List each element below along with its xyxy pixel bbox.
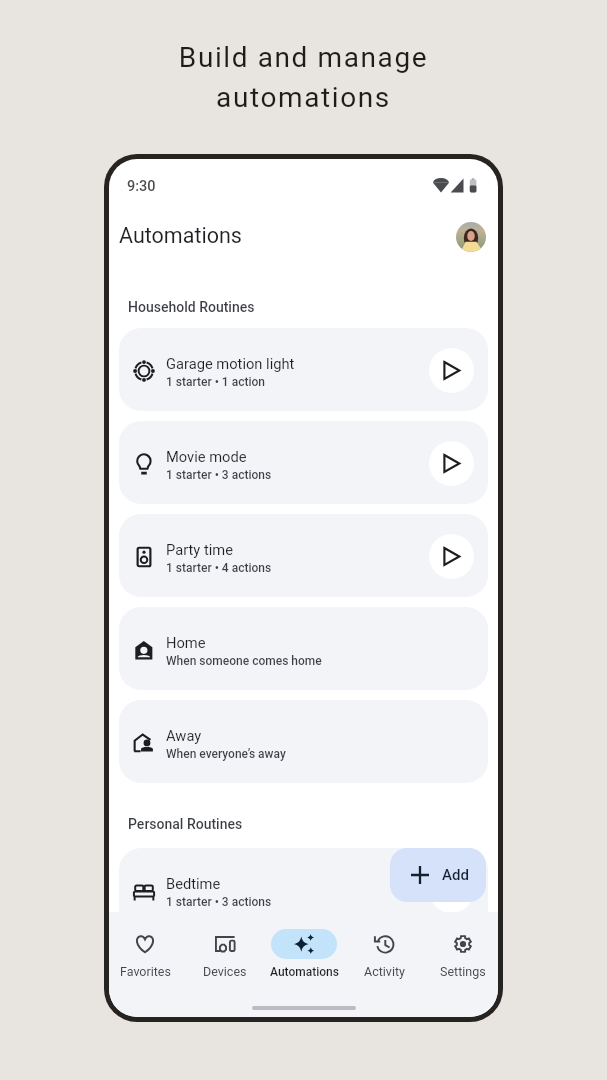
staticText: 1 starter • 1 action	[166, 375, 266, 389]
staticText: Movie mode	[166, 448, 247, 465]
button[interactable]: Run automation	[429, 441, 474, 486]
staticText: Add	[442, 866, 469, 884]
button[interactable]: Devices	[185, 912, 265, 984]
staticText: Household Routines	[128, 299, 255, 315]
staticText: 1 starter • 4 actions	[166, 561, 272, 575]
staticText: When everyone’s away	[166, 747, 286, 761]
button[interactable]: Home	[119, 607, 488, 690]
staticText: Build and manage automations	[0, 41, 607, 114]
button[interactable]: Bedtime	[119, 848, 488, 931]
button[interactable]: Run automation	[429, 534, 474, 579]
staticText: 1 starter • 3 actions	[166, 468, 272, 482]
button[interactable]: Movie mode	[119, 421, 488, 504]
staticText: Favorites	[120, 964, 171, 979]
staticText: Automations	[270, 965, 339, 979]
staticText: Party time	[166, 541, 233, 558]
staticText: When someone comes home	[166, 654, 322, 668]
button[interactable]: Automations	[264, 912, 344, 984]
button[interactable]: Favorites	[109, 912, 185, 984]
staticText: Garage motion light	[166, 355, 295, 372]
staticText: Settings	[440, 964, 486, 979]
button[interactable]: Run automation	[429, 348, 474, 393]
staticText: Personal Routines	[128, 816, 243, 832]
button[interactable]: Run automation	[429, 868, 474, 913]
button[interactable]: Settings	[423, 912, 498, 984]
staticText: Home	[166, 634, 206, 651]
staticText: Automations	[119, 223, 242, 248]
button[interactable]: Garage motion light	[119, 328, 488, 411]
button[interactable]: Activity	[344, 912, 424, 984]
staticText: 1 starter • 3 actions	[166, 895, 272, 909]
staticText: 9:30	[127, 178, 156, 195]
staticText: Bedtime	[166, 875, 221, 892]
button[interactable]: Party time	[119, 514, 488, 597]
staticText: Devices	[203, 964, 247, 979]
staticText: Activity	[364, 964, 405, 979]
button[interactable]: Add	[390, 848, 486, 902]
staticText: Away	[166, 727, 202, 744]
button[interactable]: Away	[119, 700, 488, 783]
button[interactable]: Account	[456, 222, 486, 252]
